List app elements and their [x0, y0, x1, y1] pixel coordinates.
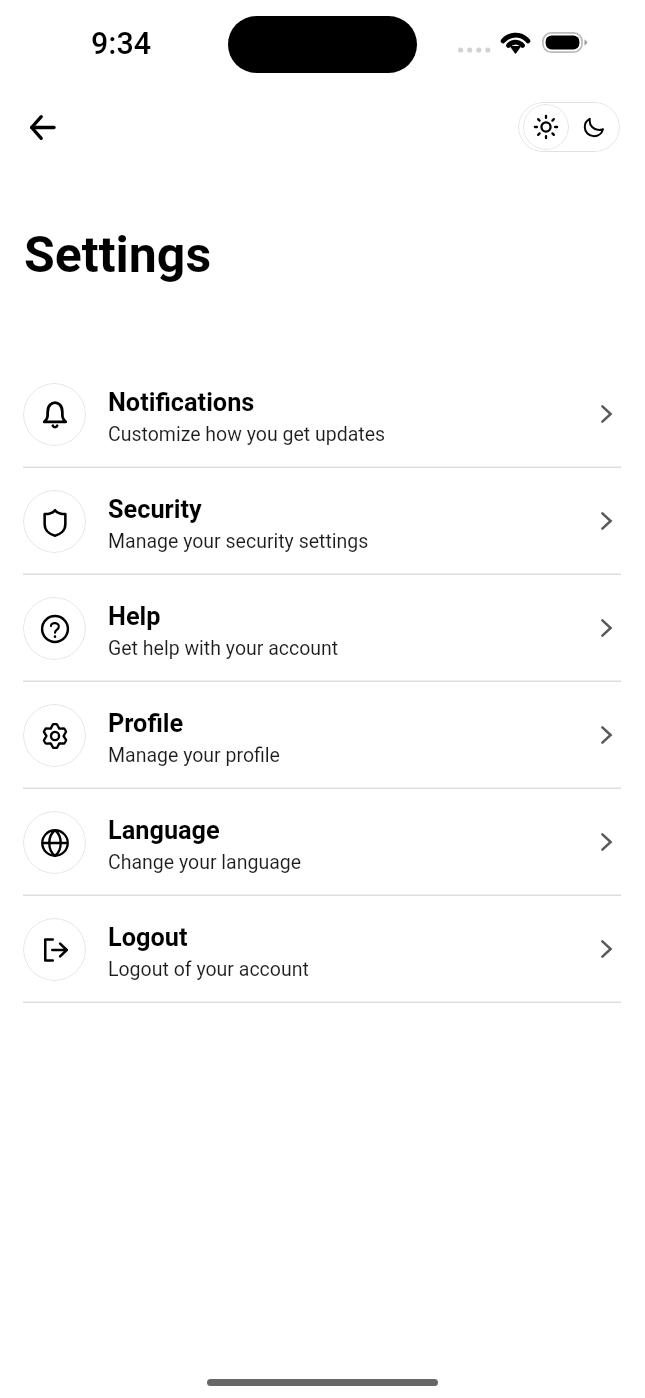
button[interactable]: Logout	[0, 896, 645, 1003]
button[interactable]: Toggle light or dark theme	[518, 102, 620, 152]
staticText: Manage your security settings	[108, 530, 369, 553]
staticText: Get help with your account	[108, 637, 339, 660]
staticText: Notifications	[108, 388, 255, 418]
staticText: Help	[108, 602, 161, 632]
staticText: Language	[108, 816, 220, 846]
button[interactable]: Back	[12, 97, 72, 157]
button[interactable]: Notifications	[0, 361, 645, 468]
staticText: Logout	[108, 923, 188, 953]
button[interactable]: Security	[0, 468, 645, 575]
staticText: Manage your profile	[108, 744, 280, 767]
staticText: Settings	[24, 226, 212, 285]
button[interactable]: Language	[0, 789, 645, 896]
button[interactable]: Help	[0, 575, 645, 682]
button[interactable]: Profile	[0, 682, 645, 789]
staticText: Profile	[108, 709, 184, 739]
staticText: Customize how you get updates	[108, 423, 386, 446]
staticText: Security	[108, 495, 202, 525]
staticText: 9:34	[91, 26, 152, 62]
staticText: Logout of your account	[108, 958, 309, 981]
staticText: Change your language	[108, 851, 302, 874]
